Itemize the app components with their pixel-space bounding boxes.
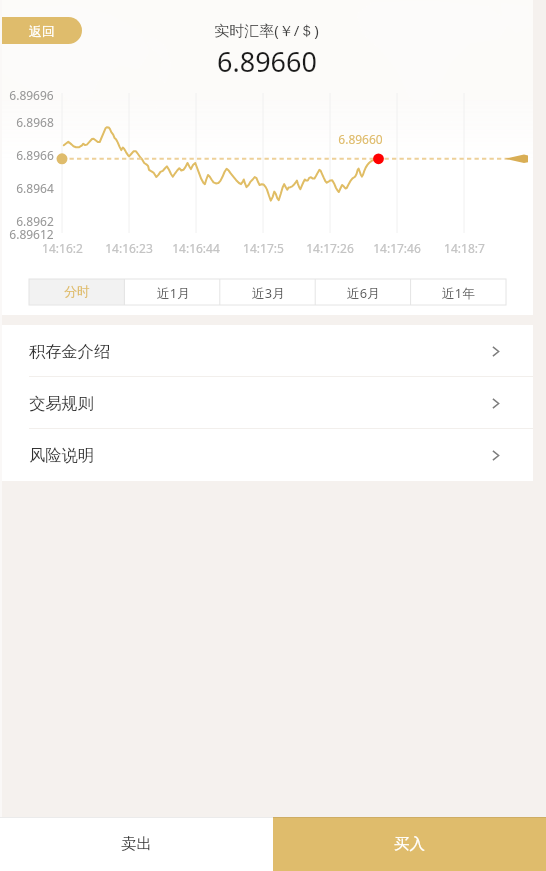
- staticText: 交易规则: [29, 393, 94, 413]
- button[interactable]: 返回: [1, 17, 82, 44]
- staticText: 积存金介绍: [29, 341, 110, 361]
- staticText: 近1年: [442, 284, 475, 301]
- button[interactable]: 近1月: [125, 279, 221, 305]
- button[interactable]: 近6月: [316, 279, 411, 305]
- staticText: 14:16:44: [172, 240, 220, 256]
- button[interactable]: 交易规则: [0, 377, 533, 429]
- button[interactable]: 分时: [29, 279, 125, 305]
- button[interactable]: 近3月: [221, 279, 316, 305]
- staticText: 14:17:26: [306, 240, 354, 256]
- staticText: 14:18:7: [444, 240, 485, 256]
- staticText: 6.8966: [16, 147, 54, 163]
- staticText: 6.89660: [338, 131, 383, 147]
- staticText: 6.89612: [9, 226, 54, 242]
- staticText: 实时汇率(￥/＄): [214, 20, 319, 40]
- other: More: [489, 449, 502, 462]
- staticText: 买入: [394, 834, 425, 854]
- button[interactable]: 风险说明: [0, 429, 533, 481]
- staticText: 近3月: [252, 284, 285, 301]
- other: More: [489, 345, 502, 358]
- staticText: 14:17:46: [373, 240, 421, 256]
- button[interactable]: 买入: [273, 817, 546, 871]
- button[interactable]: 积存金介绍: [0, 325, 533, 377]
- staticText: 6.89696: [9, 87, 54, 103]
- staticText: 6.89660: [217, 43, 317, 80]
- staticText: 6.8968: [16, 114, 54, 130]
- button[interactable]: 近1年: [411, 279, 506, 305]
- button[interactable]: 卖出: [0, 817, 273, 871]
- staticText: 近6月: [347, 284, 380, 301]
- staticText: 6.8964: [16, 180, 54, 196]
- staticText: 近1月: [157, 284, 190, 301]
- staticText: 风险说明: [29, 445, 94, 465]
- staticText: 14:16:2: [42, 240, 83, 256]
- staticText: 卖出: [121, 834, 152, 854]
- staticText: 6.8962: [16, 213, 54, 229]
- staticText: 14:17:5: [243, 240, 284, 256]
- staticText: 分时: [64, 284, 90, 300]
- staticText: 14:16:23: [105, 240, 153, 256]
- other: More: [489, 397, 502, 410]
- staticText: 返回: [29, 23, 55, 39]
